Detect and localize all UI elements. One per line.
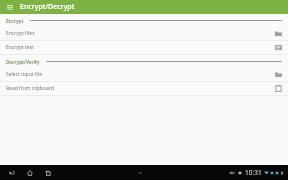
staticText: Select input file xyxy=(6,71,42,78)
button[interactable]: Home xyxy=(24,167,35,178)
staticText: Encrypt xyxy=(6,18,24,24)
button[interactable]: Back xyxy=(6,167,17,178)
button[interactable]: Select input file xyxy=(0,68,288,81)
button[interactable]: Recent apps xyxy=(42,167,53,178)
staticText: Encrypt files xyxy=(6,30,35,37)
staticText: Encrypt/Decrypt xyxy=(20,2,75,12)
button[interactable]: Read from clipboard xyxy=(0,82,288,95)
staticText: Read from clipboard xyxy=(6,85,54,92)
staticText: Encrypt text xyxy=(6,44,35,51)
button[interactable]: Encrypt files xyxy=(0,27,288,40)
staticText: Decrypt/Verify xyxy=(6,59,40,65)
button[interactable]: Open navigation drawer xyxy=(5,2,15,12)
button[interactable]: Encrypt text xyxy=(0,41,288,54)
staticText: 10:31 xyxy=(245,168,262,177)
